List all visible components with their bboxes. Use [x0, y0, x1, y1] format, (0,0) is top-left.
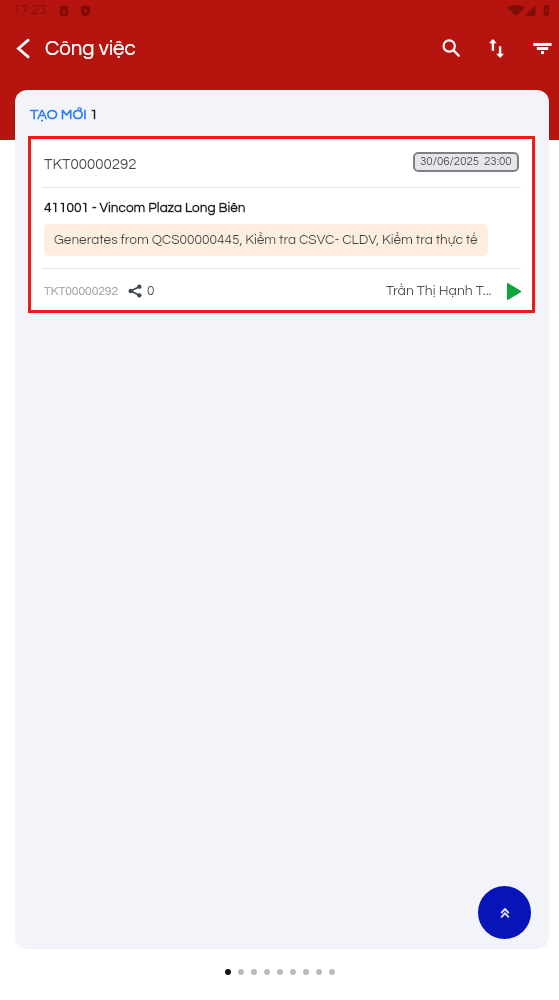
button[interactable]: Filter: [520, 26, 559, 70]
button[interactable]: Search: [429, 26, 473, 70]
button[interactable]: Scroll to top: [478, 886, 531, 939]
staticText: 17:23: [13, 3, 47, 17]
staticText: 1: [90, 107, 98, 122]
staticText: 30/06/2025 23:00: [420, 156, 512, 168]
staticText: Công việc: [45, 38, 136, 59]
button[interactable]: Sort: [474, 26, 518, 70]
staticText: TKT00000292: [44, 285, 119, 297]
staticText: 411001 - Vincom Plaza Long Biên: [44, 201, 246, 215]
staticText: TẠO MỚI: [30, 107, 87, 122]
staticText: Trần Thị Hạnh T...: [386, 284, 492, 298]
staticText: 0: [147, 284, 155, 298]
button[interactable]: Back: [0, 26, 45, 70]
button[interactable]: TKT00000292: [28, 136, 535, 313]
staticText: Generates from QCS00000445, Kiểm tra CSV…: [54, 233, 478, 247]
staticText: TKT00000292: [44, 157, 137, 172]
